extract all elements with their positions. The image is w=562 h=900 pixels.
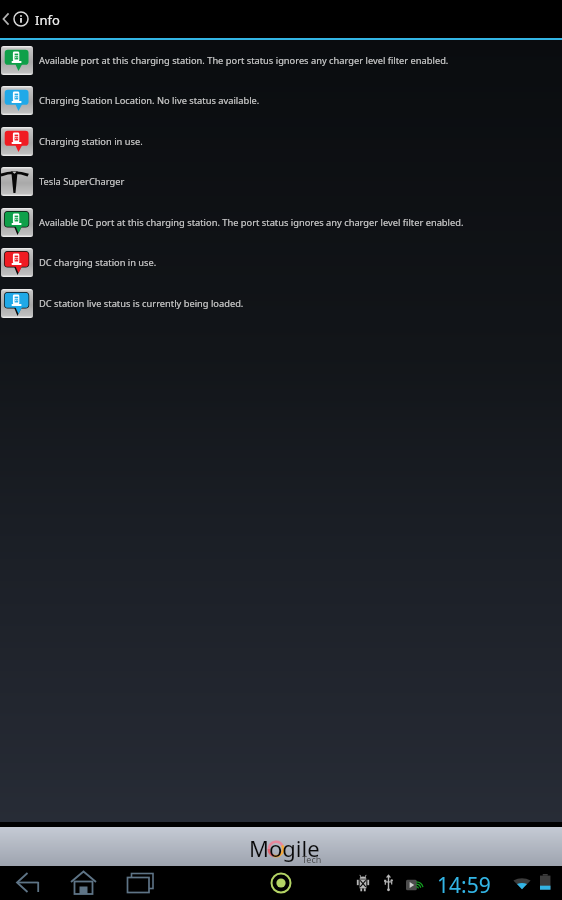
staticText: Charging Station Location. No live statu…: [39, 94, 260, 107]
staticText: Mogile: [249, 833, 320, 863]
button[interactable]: Charging station in use.: [0, 127, 562, 156]
button[interactable]: Available port at this charging station.…: [0, 46, 562, 75]
staticText: Charging station in use.: [39, 135, 143, 148]
staticText: Info: [35, 11, 60, 29]
staticText: DC station live status is currently bein…: [39, 297, 244, 310]
button[interactable]: Tesla SuperCharger: [0, 167, 562, 196]
staticText: Tesla SuperCharger: [39, 175, 125, 188]
button[interactable]: Assist: [270, 872, 292, 894]
staticText: 14:59: [437, 871, 491, 900]
button[interactable]: Info: [0, 0, 64, 38]
staticText: Available port at this charging station.…: [39, 54, 449, 67]
button[interactable]: DC station live status is currently bein…: [0, 289, 562, 318]
button[interactable]: Recents: [125, 866, 155, 900]
button[interactable]: Charging Station Location. No live statu…: [0, 86, 562, 115]
button[interactable]: Back: [13, 866, 43, 900]
button[interactable]: Home: [69, 866, 99, 900]
button[interactable]: DC charging station in use.: [0, 248, 562, 277]
button[interactable]: Available DC port at this charging stati…: [0, 208, 562, 237]
staticText: DC charging station in use.: [39, 256, 157, 269]
staticText: Available DC port at this charging stati…: [39, 216, 464, 229]
staticText: Tech: [302, 853, 322, 865]
